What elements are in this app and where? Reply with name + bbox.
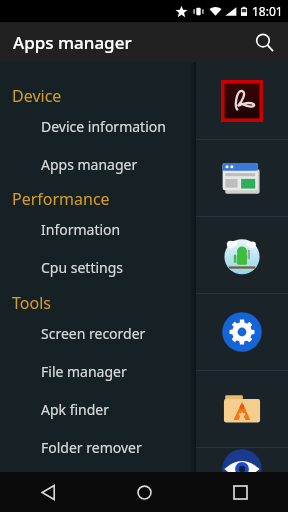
button[interactable]: Apk finder bbox=[0, 396, 196, 422]
button[interactable]: Cpu settings bbox=[0, 254, 196, 280]
button[interactable]: File manager bbox=[0, 358, 196, 384]
staticText: Device information bbox=[41, 117, 166, 136]
staticText: Information bbox=[41, 220, 121, 239]
button[interactable] bbox=[196, 217, 288, 293]
staticText: Apps manager bbox=[13, 31, 132, 54]
staticText: Cpu settings bbox=[41, 258, 124, 277]
button[interactable]: Folder remover bbox=[0, 434, 196, 460]
button[interactable] bbox=[196, 62, 288, 139]
button[interactable] bbox=[196, 371, 288, 447]
button[interactable]: Search bbox=[246, 24, 282, 60]
button[interactable]: Information bbox=[0, 216, 196, 242]
staticText: Screen recorder bbox=[41, 324, 146, 343]
button[interactable]: Device information bbox=[0, 113, 196, 139]
staticText: Folder remover bbox=[41, 438, 142, 457]
button[interactable]: Performance bbox=[0, 186, 196, 212]
staticText: 18:01 bbox=[252, 3, 283, 19]
button[interactable] bbox=[196, 448, 288, 472]
button[interactable]: Recents bbox=[192, 472, 288, 512]
button[interactable]: Information bbox=[0, 468, 196, 494]
staticText: Performance bbox=[12, 188, 110, 210]
button[interactable]: Device bbox=[0, 83, 196, 109]
button[interactable] bbox=[196, 294, 288, 370]
staticText: Information bbox=[12, 470, 103, 492]
button[interactable]: Screen recorder bbox=[0, 320, 196, 346]
button[interactable] bbox=[196, 140, 288, 216]
staticText: Tools bbox=[12, 292, 51, 314]
button[interactable]: Tools bbox=[0, 290, 196, 316]
staticText: File manager bbox=[41, 362, 127, 381]
button[interactable]: Home bbox=[96, 472, 192, 512]
button[interactable]: Back bbox=[0, 472, 96, 512]
staticText: Apps manager bbox=[41, 155, 138, 174]
staticText: Apk finder bbox=[41, 400, 110, 419]
button[interactable]: Apps manager bbox=[0, 151, 196, 177]
staticText: Device bbox=[12, 85, 62, 107]
